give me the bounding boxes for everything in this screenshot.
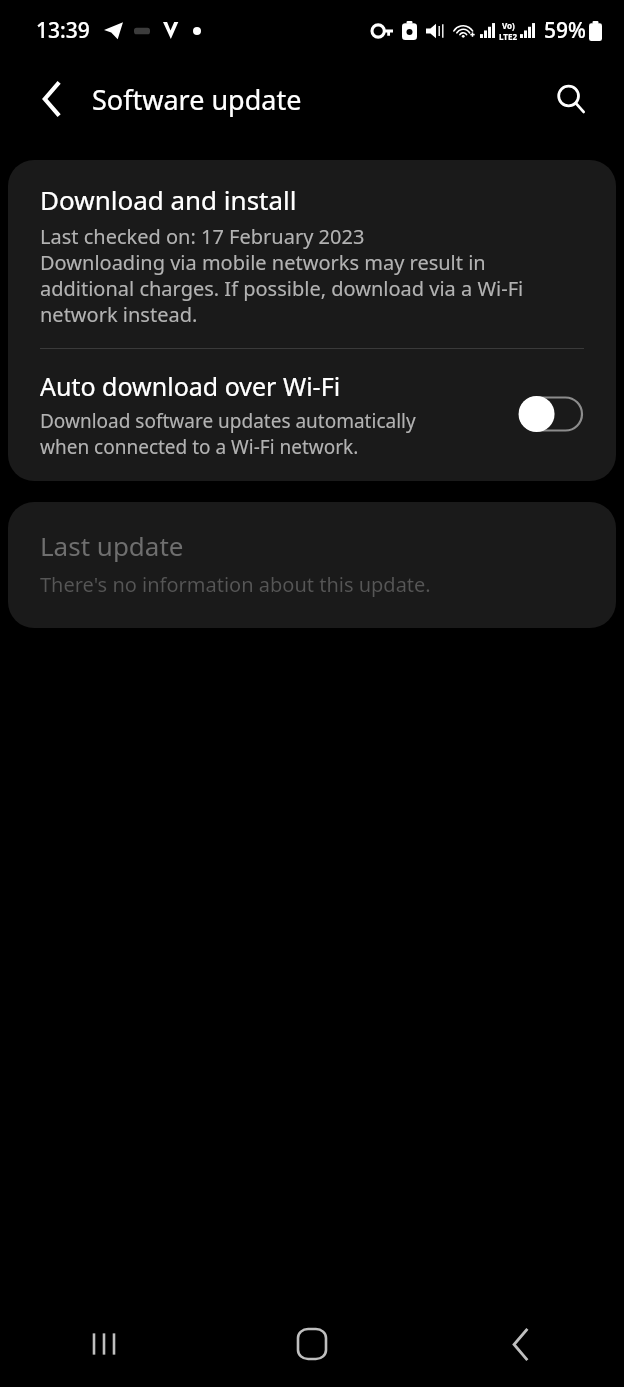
button[interactable]: Recent apps bbox=[0, 1301, 208, 1387]
staticText: Last update bbox=[40, 528, 184, 563]
staticText: 59% bbox=[544, 16, 586, 45]
button[interactable]: Search bbox=[540, 68, 602, 130]
button[interactable]: Auto download over Wi-Fi bbox=[8, 349, 616, 481]
staticText: 13:39 bbox=[36, 16, 90, 45]
button[interactable]: Download and install bbox=[8, 160, 616, 348]
button[interactable]: Back bbox=[22, 69, 82, 129]
button[interactable]: Auto download over Wi-Fi toggle bbox=[514, 391, 588, 437]
staticText: Download software updates automatically … bbox=[40, 408, 416, 459]
button[interactable]: Back bbox=[416, 1301, 624, 1387]
staticText: LTE2 bbox=[499, 31, 517, 42]
staticText: Software update bbox=[92, 81, 302, 118]
staticText: Vo) bbox=[502, 20, 515, 31]
staticText: Last checked on: 17 February 2023 Downlo… bbox=[40, 223, 584, 328]
staticText: Auto download over Wi-Fi bbox=[40, 369, 341, 403]
staticText: Download and install bbox=[40, 182, 297, 217]
button[interactable]: Last update bbox=[8, 502, 616, 628]
button[interactable]: Home bbox=[208, 1301, 416, 1387]
staticText: There's no information about this update… bbox=[40, 571, 431, 598]
